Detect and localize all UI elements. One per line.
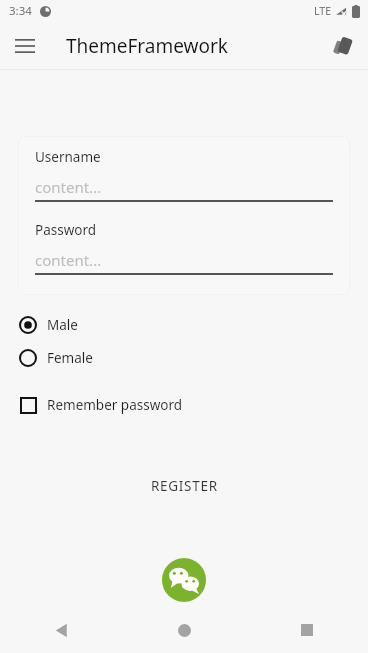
button[interactable]: Female xyxy=(0,347,368,369)
button[interactable]: content... xyxy=(35,250,333,275)
button[interactable]: Back xyxy=(39,608,83,652)
button[interactable]: Male xyxy=(0,314,368,336)
button[interactable]: REGISTER xyxy=(0,473,368,499)
staticText: content... xyxy=(35,177,102,197)
button[interactable]: Sign in with WeChat xyxy=(162,558,206,602)
staticText: Male xyxy=(47,316,78,334)
staticText: REGISTER xyxy=(151,477,218,495)
staticText: ThemeFramework xyxy=(66,33,229,59)
staticText: Username xyxy=(35,148,101,166)
staticText: 3:34 xyxy=(9,3,32,19)
staticText: Female xyxy=(47,349,93,367)
staticText: content... xyxy=(35,250,102,270)
button[interactable]: Open navigation menu xyxy=(10,31,39,60)
staticText: Remember password xyxy=(47,396,183,414)
button[interactable]: Change theme xyxy=(326,29,360,63)
button[interactable]: content... xyxy=(35,177,333,202)
staticText: LTE xyxy=(314,4,331,18)
button[interactable]: Remember password xyxy=(0,394,368,416)
button[interactable]: Home xyxy=(162,608,206,652)
button[interactable]: Recent apps xyxy=(285,608,329,652)
staticText: Password xyxy=(35,221,97,239)
